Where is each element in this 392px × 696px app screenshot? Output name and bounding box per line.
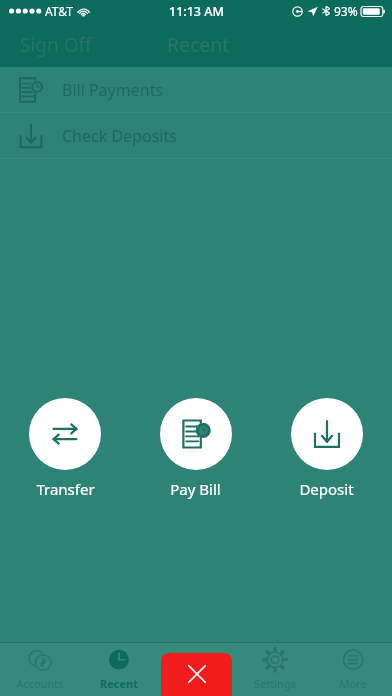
button[interactable]: Deposit — [261, 398, 392, 499]
button[interactable]: Cancel — [161, 653, 232, 696]
staticText: Bill Payments — [62, 79, 164, 101]
button[interactable]: Check Deposits — [0, 113, 392, 158]
staticText: Recent — [167, 32, 230, 58]
button[interactable]: Bill Payments — [0, 67, 392, 112]
button[interactable]: Recent — [157, 26, 240, 64]
staticText: Sign Off — [20, 32, 92, 58]
staticText: Accounts — [16, 676, 64, 691]
button[interactable]: Sign Off — [8, 26, 104, 64]
button[interactable]: Settings — [236, 642, 314, 696]
staticText: More — [339, 676, 367, 691]
staticText: Deposit — [299, 479, 354, 499]
staticText: 93% — [334, 3, 358, 19]
staticText: Pay Bill — [170, 479, 221, 499]
staticText: AT&T — [45, 3, 73, 19]
staticText: 11:13 AM — [169, 3, 224, 20]
staticText: Transfer — [36, 479, 95, 499]
button[interactable]: More — [314, 642, 392, 696]
button[interactable]: Accounts — [0, 642, 79, 696]
staticText: Check Deposits — [62, 125, 177, 147]
staticText: Settings — [254, 676, 296, 691]
button[interactable]: Transfer — [0, 398, 130, 499]
staticText: Recent — [100, 676, 138, 691]
button[interactable]: Pay Bill — [130, 398, 261, 499]
button[interactable]: Recent — [79, 642, 158, 696]
